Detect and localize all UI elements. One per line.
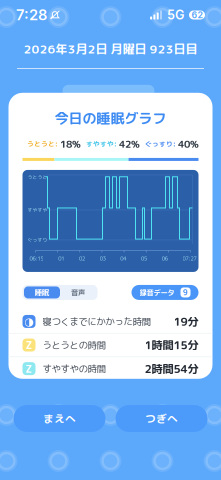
staticText: 05 — [141, 255, 147, 262]
staticText: まえへ — [43, 411, 76, 426]
staticText: 録音データ — [139, 287, 174, 297]
staticText: 19分 — [173, 313, 198, 329]
staticText: 今日の睡眠グラフ — [54, 108, 166, 128]
staticText: 寝つくまでにかかった時間 — [42, 315, 150, 328]
staticText: 02 — [79, 255, 85, 262]
button[interactable]: Z — [8, 357, 212, 380]
staticText: 18% — [60, 137, 81, 151]
staticText: 5G — [167, 7, 184, 23]
staticText: Z — [25, 338, 32, 352]
staticText: 1時間15分 — [144, 337, 198, 353]
staticText: ぐっすり — [27, 237, 47, 243]
staticText: うとうとの時間 — [42, 338, 105, 351]
staticText: つぎへ — [145, 411, 178, 426]
staticText: ぐっすり: — [145, 139, 176, 149]
button[interactable]: 音声 — [60, 286, 96, 298]
button[interactable]: Z — [8, 333, 212, 356]
button[interactable]: ◑ — [8, 310, 212, 333]
staticText: すやすや: — [86, 139, 117, 149]
button[interactable]: つぎへ — [115, 405, 207, 432]
staticText: 42% — [119, 137, 140, 151]
staticText: 2時間54分 — [144, 361, 198, 376]
staticText: 01 — [58, 255, 64, 262]
staticText: 06:15 — [29, 255, 43, 262]
staticText: 7:28 — [16, 6, 47, 24]
staticText: 62 — [191, 10, 202, 20]
button[interactable]: 録音データ — [131, 285, 198, 300]
staticText: 音声 — [71, 287, 85, 297]
staticText: 睡眠 — [35, 287, 49, 297]
staticText: すやすやの時間 — [42, 362, 105, 375]
staticText: 40% — [178, 137, 199, 151]
button[interactable]: まえへ — [13, 405, 105, 432]
staticText: 03 — [100, 255, 106, 262]
staticText: うとうと: — [27, 139, 58, 149]
staticText: 06 — [162, 255, 168, 262]
staticText: 2026年3月2日 月曜日 923日目 — [23, 41, 197, 57]
button[interactable]: 睡眠 — [24, 286, 60, 298]
staticText: Z — [25, 361, 32, 376]
staticText: 07:27 — [182, 255, 196, 262]
staticText: 9 — [183, 287, 188, 297]
staticText: ◑ — [24, 315, 33, 328]
staticText: うとうと — [27, 174, 47, 180]
staticText: 04 — [120, 255, 126, 262]
staticText: すやすや — [27, 207, 47, 213]
